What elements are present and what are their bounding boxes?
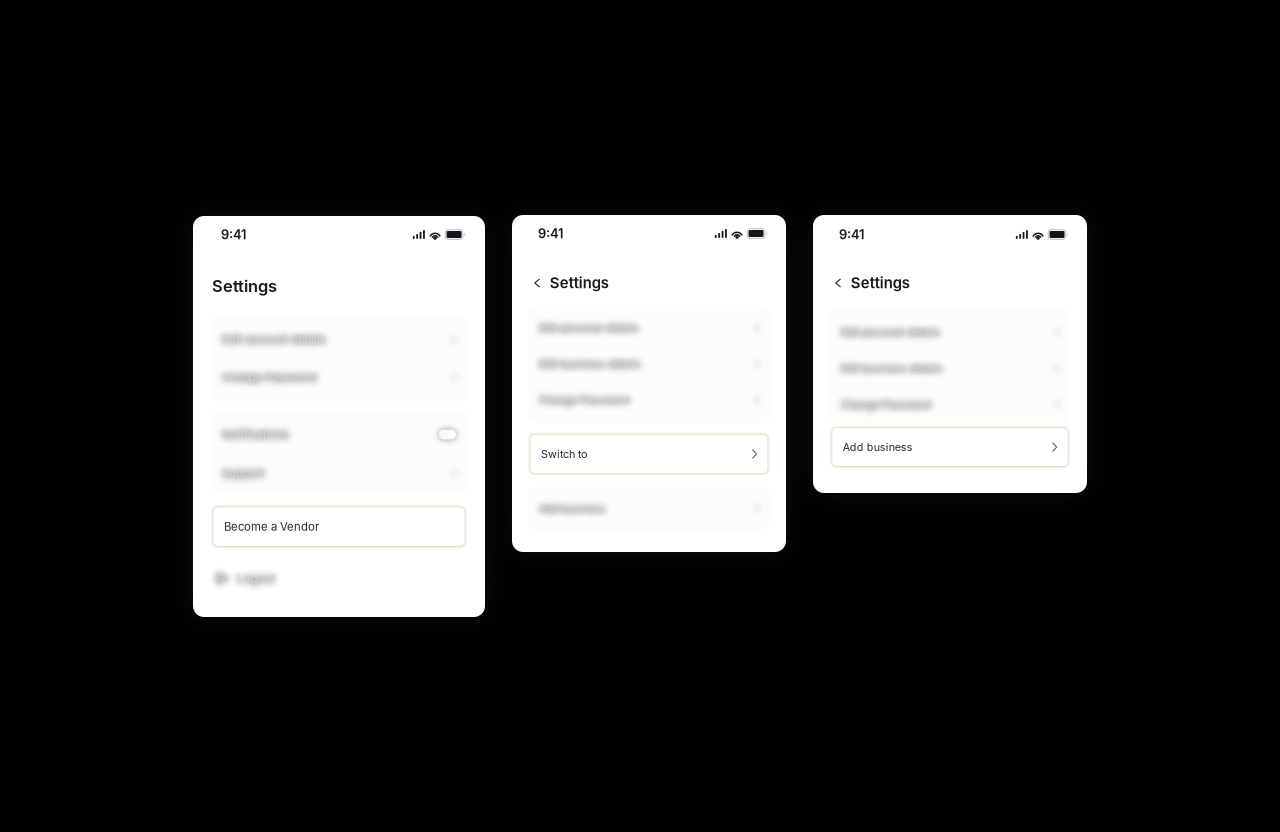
staticText: 9:41 (221, 227, 246, 242)
button[interactable]: Edit personal details (830, 314, 1070, 350)
button[interactable]: Settings (813, 274, 918, 292)
staticText: Add business (539, 502, 606, 515)
button[interactable]: Notifications (211, 415, 467, 454)
staticText: Become a Vendor (224, 520, 319, 534)
staticText: Change Password (222, 371, 317, 384)
staticText: Settings (851, 274, 910, 292)
staticText: Edit personal details (539, 321, 639, 334)
staticText: Notifications (222, 428, 289, 441)
staticText: Logout (236, 571, 275, 585)
button[interactable]: Edit account details (211, 320, 467, 358)
staticText: 9:41 (839, 227, 864, 242)
button[interactable]: Settings (512, 274, 617, 292)
staticText: Change Password (539, 394, 629, 406)
button[interactable]: Change Password (830, 386, 1070, 423)
button[interactable]: Edit business details (528, 346, 770, 382)
staticText: Change Password (841, 398, 931, 411)
staticText: Add business (843, 441, 913, 453)
button[interactable]: Edit business details (830, 350, 1070, 386)
button[interactable]: Edit personal details (528, 310, 770, 346)
staticText: Settings (212, 276, 277, 296)
staticText: Edit business details (841, 362, 943, 375)
staticText: Settings (550, 274, 609, 292)
staticText: 9:41 (538, 226, 563, 241)
staticText: Edit personal details (841, 326, 941, 338)
button[interactable]: Change Password (211, 358, 467, 396)
staticText: Support (222, 467, 265, 480)
staticText: Switch to (541, 447, 587, 460)
button[interactable]: Support (211, 454, 467, 493)
staticText: Edit account details (222, 333, 326, 346)
staticText: Edit business details (539, 357, 641, 370)
button[interactable]: Add business (528, 491, 770, 526)
button[interactable]: Change Password (528, 382, 770, 418)
button[interactable]: Become a Vendor (211, 505, 467, 548)
button[interactable]: Switch to (528, 432, 770, 476)
button[interactable]: Add business (830, 426, 1070, 468)
